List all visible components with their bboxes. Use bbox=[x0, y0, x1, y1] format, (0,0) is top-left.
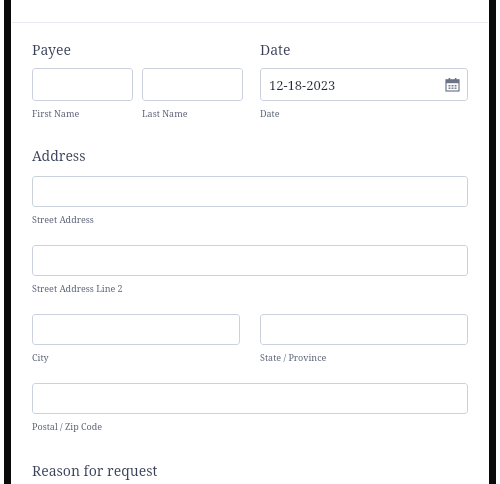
staticText: Street Address Line 2 bbox=[32, 282, 123, 294]
staticText: State / Province bbox=[260, 351, 327, 363]
staticText: Payee bbox=[32, 40, 71, 59]
button[interactable] bbox=[32, 68, 133, 101]
staticText: 12-18-2023 bbox=[269, 76, 336, 94]
staticText: First Name bbox=[32, 107, 142, 119]
staticText: Date bbox=[260, 107, 280, 119]
staticText: Last Name bbox=[142, 107, 260, 119]
button[interactable] bbox=[260, 314, 468, 345]
button[interactable] bbox=[142, 68, 243, 101]
button[interactable] bbox=[32, 245, 468, 276]
staticText: City bbox=[32, 351, 49, 363]
staticText: Address bbox=[32, 146, 86, 165]
button[interactable] bbox=[32, 314, 240, 345]
staticText: Street Address bbox=[32, 213, 94, 225]
staticText: Date bbox=[260, 40, 291, 59]
button[interactable] bbox=[32, 383, 468, 414]
button[interactable]: Open date picker bbox=[446, 78, 459, 91]
button[interactable]: 12-18-2023 bbox=[260, 68, 468, 101]
button[interactable] bbox=[32, 176, 468, 207]
staticText: Postal / Zip Code bbox=[32, 420, 103, 432]
staticText: Reason for request bbox=[32, 461, 158, 480]
